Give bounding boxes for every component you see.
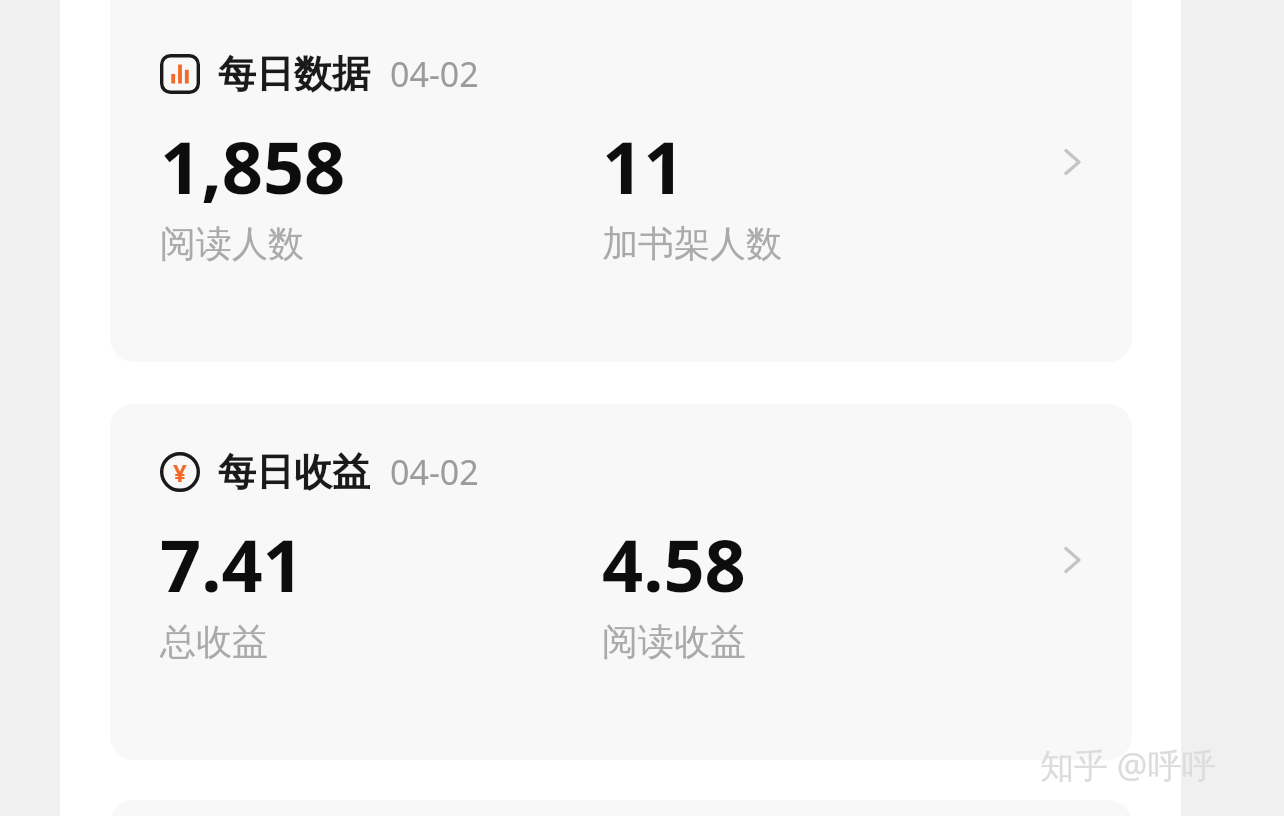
staticText: 每日数据 bbox=[218, 50, 370, 98]
staticText: ¥ bbox=[173, 456, 187, 489]
staticText: 知乎 @呼呼 bbox=[1040, 742, 1216, 788]
button[interactable]: Daily data bbox=[110, 0, 1132, 362]
other: Daily income bbox=[160, 452, 200, 492]
staticText: 1,858 bbox=[160, 117, 346, 215]
staticText: 04-02 bbox=[390, 51, 479, 97]
staticText: 每日收益 bbox=[218, 448, 370, 496]
staticText: 阅读收益 bbox=[602, 619, 746, 664]
other: Daily data bbox=[160, 54, 200, 94]
button[interactable]: Daily income bbox=[110, 404, 1132, 760]
button[interactable]: More details bbox=[1050, 140, 1094, 184]
button[interactable]: More details bbox=[1050, 538, 1094, 582]
staticText: 7.41 bbox=[160, 515, 304, 613]
staticText: 加书架人数 bbox=[602, 221, 782, 266]
staticText: 总收益 bbox=[160, 619, 268, 664]
staticText: 4.58 bbox=[602, 515, 746, 613]
staticText: 04-02 bbox=[390, 449, 479, 495]
staticText: 11 bbox=[602, 117, 685, 215]
staticText: 阅读人数 bbox=[160, 221, 304, 266]
